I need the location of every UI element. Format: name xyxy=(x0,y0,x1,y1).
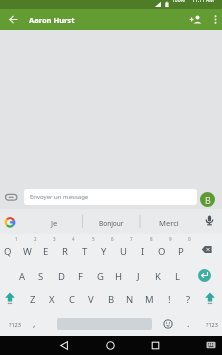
button[interactable]: B xyxy=(200,192,215,207)
button[interactable]: Z xyxy=(19,290,47,308)
staticText: 1 xyxy=(15,236,18,242)
button[interactable]: ! xyxy=(155,290,183,308)
staticText: C xyxy=(69,293,76,306)
staticText: . xyxy=(187,317,190,329)
button[interactable]: C xyxy=(58,290,86,308)
staticText: Y xyxy=(101,245,107,258)
button[interactable]: J xyxy=(124,267,152,285)
staticText: Envoyer un message xyxy=(30,193,89,201)
staticText: W xyxy=(23,245,32,258)
button[interactable]: V xyxy=(77,290,105,308)
staticText: 0 xyxy=(188,236,191,242)
button[interactable]: N xyxy=(116,290,144,308)
staticText: ? xyxy=(186,293,191,306)
button[interactable]: F xyxy=(66,267,94,285)
button[interactable]: Bonjour xyxy=(97,214,125,232)
staticText: Z xyxy=(30,293,36,306)
button[interactable]: X xyxy=(38,290,66,308)
button[interactable] xyxy=(202,213,217,231)
staticText: 6 xyxy=(111,236,114,242)
staticText: L xyxy=(175,270,180,283)
staticText: ?123 xyxy=(9,321,21,328)
button[interactable]: E xyxy=(32,242,60,260)
staticText: 4 xyxy=(72,236,75,242)
staticText: Je xyxy=(51,218,58,228)
button[interactable]: U xyxy=(109,242,137,260)
button[interactable]: B xyxy=(97,290,125,308)
staticText: M xyxy=(145,293,154,306)
staticText: X xyxy=(49,293,55,306)
button[interactable]: R xyxy=(51,242,79,260)
staticText: U xyxy=(120,245,127,258)
button[interactable] xyxy=(57,338,72,353)
button[interactable] xyxy=(209,11,222,28)
staticText: Q xyxy=(4,245,12,258)
button[interactable]: I xyxy=(129,242,157,260)
staticText: F xyxy=(78,270,83,283)
button[interactable]: ? xyxy=(174,290,202,308)
button[interactable] xyxy=(161,317,175,331)
staticText: D xyxy=(58,270,65,283)
staticText: V xyxy=(88,293,94,306)
button[interactable]: Y xyxy=(90,242,118,260)
button[interactable] xyxy=(148,338,163,353)
staticText: H xyxy=(115,270,123,283)
staticText: 5 xyxy=(92,236,95,242)
button[interactable]: ?123 xyxy=(1,315,29,333)
staticText: Bonjour xyxy=(99,219,124,228)
button[interactable]: Merci xyxy=(155,214,183,232)
button[interactable]: T xyxy=(71,242,99,260)
staticText: J xyxy=(137,270,140,283)
button[interactable]: Je xyxy=(40,214,68,232)
staticText: N xyxy=(126,293,134,306)
staticText: 3 xyxy=(53,236,56,242)
button[interactable]: A xyxy=(8,267,36,285)
button[interactable]: L xyxy=(163,267,191,285)
button[interactable] xyxy=(103,338,118,353)
button[interactable] xyxy=(202,291,218,306)
button[interactable]: K xyxy=(144,267,172,285)
button[interactable]: D xyxy=(47,267,75,285)
button[interactable]: S xyxy=(27,267,55,285)
button[interactable]: . xyxy=(174,314,202,332)
button[interactable]: Q xyxy=(0,242,22,260)
staticText: 100% xyxy=(172,0,185,4)
staticText: Merci xyxy=(159,218,179,228)
staticText: B xyxy=(108,293,115,306)
button[interactable] xyxy=(204,339,218,351)
staticText: G xyxy=(97,270,104,283)
staticText: 11:11 AM xyxy=(192,0,214,4)
button[interactable] xyxy=(188,11,203,28)
staticText: ! xyxy=(168,293,171,306)
button[interactable] xyxy=(4,191,18,204)
staticText: K xyxy=(155,270,161,283)
button[interactable]: W xyxy=(13,242,41,260)
button[interactable]: H xyxy=(105,267,133,285)
button[interactable] xyxy=(5,11,22,28)
button[interactable] xyxy=(198,269,211,282)
staticText: B xyxy=(205,194,211,206)
button[interactable]: ?123 xyxy=(198,315,222,333)
button[interactable]: G xyxy=(86,267,114,285)
button[interactable] xyxy=(197,242,216,257)
staticText: O xyxy=(158,245,166,258)
staticText: 7 xyxy=(130,236,133,242)
staticText: A xyxy=(19,270,26,283)
button[interactable]: , xyxy=(20,314,48,332)
staticText: T xyxy=(82,245,88,258)
staticText: 9 xyxy=(169,236,172,242)
button[interactable]: P xyxy=(167,242,195,260)
staticText: ?123 xyxy=(206,321,218,328)
staticText: I xyxy=(141,245,145,258)
button[interactable]: Envoyer un message xyxy=(24,189,197,205)
button[interactable] xyxy=(2,291,18,306)
staticText: P xyxy=(178,245,184,258)
button[interactable]: M xyxy=(135,290,163,308)
button[interactable]: O xyxy=(148,242,176,260)
staticText: Aaron Hurst xyxy=(29,15,75,25)
staticText: E xyxy=(43,245,49,258)
staticText: S xyxy=(38,270,44,283)
staticText: 8 xyxy=(150,236,153,242)
button[interactable] xyxy=(2,214,18,230)
